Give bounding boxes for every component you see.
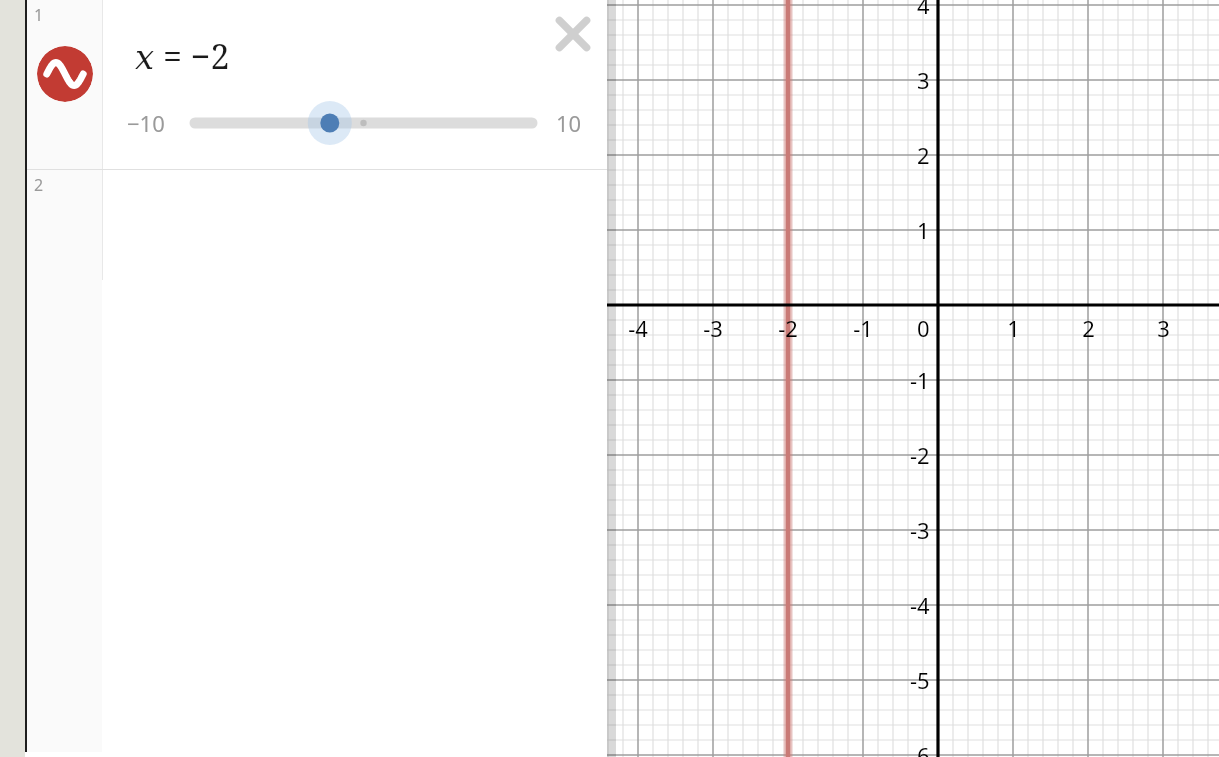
button[interactable]: Delete expression — [545, 6, 601, 62]
staticText: -3 — [703, 313, 723, 343]
staticText: 3 — [1157, 313, 1170, 343]
button[interactable]: Hide graph — [37, 46, 93, 102]
staticText: 1 — [34, 4, 44, 26]
staticText: -5 — [910, 665, 930, 695]
staticText: 4 — [917, 0, 930, 20]
button[interactable]: 1 — [27, 0, 607, 169]
staticText: -1 — [910, 365, 930, 395]
staticText: 𝑥 = −2 — [135, 33, 230, 79]
staticText: -3 — [910, 515, 930, 545]
staticText: -4 — [910, 590, 930, 620]
staticText: -4 — [628, 313, 648, 343]
staticText: 2 — [1082, 313, 1095, 343]
staticText: 3 — [917, 65, 930, 95]
staticText: 1 — [917, 215, 930, 245]
staticText: -1 — [853, 313, 873, 343]
staticText: 0 — [917, 313, 930, 343]
staticText: −10 — [127, 108, 165, 138]
staticText: -2 — [910, 440, 930, 470]
staticText: -2 — [778, 313, 798, 343]
button[interactable] — [167, 100, 537, 146]
staticText: 10 — [556, 108, 582, 138]
staticText: 2 — [917, 140, 930, 170]
staticText: 1 — [1007, 313, 1020, 343]
staticText: 2 — [34, 174, 44, 196]
staticText: -6 — [910, 740, 930, 757]
